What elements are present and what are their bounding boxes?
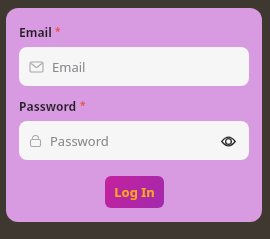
button[interactable]: Log In [105, 176, 164, 208]
staticText: * [55, 24, 61, 38]
staticText: Password [19, 98, 77, 114]
staticText: Email [52, 58, 238, 76]
staticText: Email [19, 24, 52, 40]
staticText: Log In [114, 183, 155, 201]
staticText: Password [50, 132, 218, 150]
button[interactable]: Email [19, 47, 249, 86]
button[interactable]: Password [19, 121, 249, 160]
staticText: * [80, 98, 86, 112]
button[interactable]: Show password [218, 131, 238, 151]
